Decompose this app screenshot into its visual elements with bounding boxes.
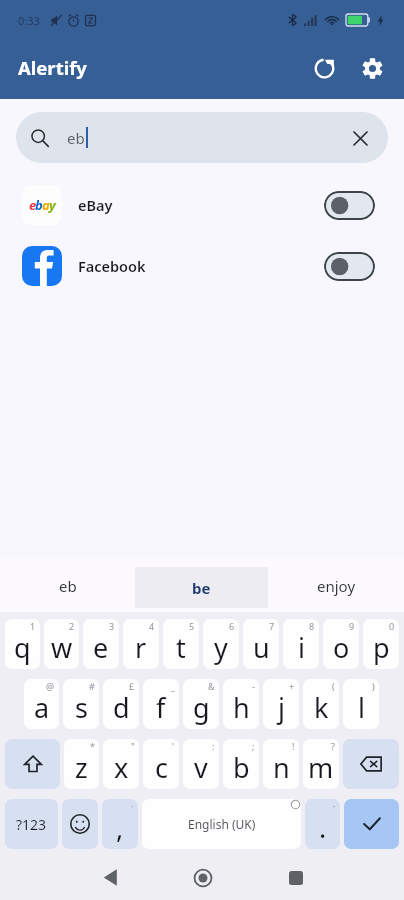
button[interactable]: Enter bbox=[344, 799, 399, 849]
button[interactable]: ' bbox=[143, 739, 179, 789]
button[interactable]: · bbox=[305, 799, 340, 849]
button[interactable]: £ bbox=[103, 679, 139, 729]
button[interactable]: ) bbox=[343, 679, 379, 729]
staticText: b bbox=[233, 749, 250, 786]
button[interactable]: ! bbox=[263, 739, 299, 789]
button[interactable]: + bbox=[263, 679, 299, 729]
staticText: 0:33 bbox=[18, 13, 40, 28]
staticText: eb bbox=[67, 128, 85, 148]
staticText: p bbox=[373, 629, 390, 666]
staticText: 1 bbox=[30, 620, 36, 632]
staticText: : bbox=[212, 740, 215, 752]
button[interactable]: eb bbox=[16, 112, 388, 163]
button[interactable]: : bbox=[183, 739, 219, 789]
button[interactable]: 3 bbox=[83, 619, 119, 669]
staticText: d bbox=[113, 689, 130, 726]
staticText: _ bbox=[171, 680, 175, 692]
staticText: y bbox=[49, 196, 55, 214]
staticText: * bbox=[90, 740, 95, 752]
staticText: o bbox=[333, 629, 350, 666]
staticText: # bbox=[89, 680, 95, 692]
button[interactable]: & bbox=[183, 679, 219, 729]
button[interactable]: 7 bbox=[243, 619, 279, 669]
button[interactable]: ; bbox=[223, 739, 259, 789]
button[interactable]: 5 bbox=[163, 619, 199, 669]
staticText: 3 bbox=[109, 620, 115, 632]
button[interactable]: Emoji bbox=[62, 799, 98, 849]
staticText: eBay bbox=[78, 195, 113, 215]
button[interactable]: 8 bbox=[283, 619, 319, 669]
button[interactable]: 6 bbox=[203, 619, 239, 669]
staticText: m bbox=[308, 749, 334, 786]
staticText: w bbox=[51, 629, 73, 666]
button[interactable]: · bbox=[102, 799, 138, 849]
button[interactable]: @ bbox=[24, 679, 59, 729]
button[interactable]: ( bbox=[303, 679, 339, 729]
button[interactable]: Home bbox=[180, 855, 225, 900]
staticText: b bbox=[35, 196, 42, 214]
button[interactable]: 9 bbox=[323, 619, 359, 669]
staticText: 0 bbox=[389, 620, 395, 632]
staticText: ( bbox=[332, 680, 335, 692]
staticText: e bbox=[29, 196, 35, 214]
staticText: Alertify bbox=[18, 55, 87, 80]
button[interactable]: _ bbox=[143, 679, 179, 729]
staticText: e bbox=[93, 629, 109, 666]
staticText: z bbox=[75, 749, 88, 786]
staticText: & bbox=[208, 680, 215, 692]
button[interactable]: Shift bbox=[5, 739, 60, 789]
staticText: u bbox=[253, 629, 270, 666]
staticText: 2 bbox=[69, 620, 75, 632]
staticText: @ bbox=[46, 680, 55, 692]
staticText: x bbox=[114, 749, 129, 786]
button[interactable]: Backspace bbox=[343, 739, 399, 789]
button[interactable]: 2 bbox=[44, 619, 79, 669]
button[interactable]: Recent apps bbox=[273, 855, 318, 900]
button[interactable] bbox=[324, 191, 375, 220]
staticText: l bbox=[358, 689, 365, 726]
button[interactable]: enjoy bbox=[268, 559, 404, 612]
staticText: q bbox=[14, 629, 31, 666]
button[interactable]: 0 bbox=[363, 619, 399, 669]
button[interactable]: eb bbox=[0, 559, 135, 612]
staticText: j bbox=[278, 689, 285, 726]
staticText: 7 bbox=[269, 620, 275, 632]
button[interactable]: * bbox=[64, 739, 99, 789]
staticText: f bbox=[156, 689, 166, 726]
staticText: g bbox=[193, 689, 210, 726]
staticText: 5 bbox=[189, 620, 195, 632]
staticText: a bbox=[42, 196, 49, 214]
button[interactable] bbox=[324, 252, 375, 281]
button[interactable]: be bbox=[135, 567, 268, 608]
button[interactable]: English (UK) bbox=[142, 799, 301, 849]
button[interactable]: # bbox=[63, 679, 99, 729]
button[interactable]: Settings bbox=[348, 44, 396, 92]
button[interactable]: Back bbox=[88, 855, 133, 900]
staticText: enjoy bbox=[317, 576, 356, 596]
button[interactable]: - bbox=[223, 679, 259, 729]
button[interactable]: Refresh bbox=[300, 44, 348, 92]
staticText: t bbox=[176, 629, 186, 666]
staticText: · bbox=[131, 800, 134, 812]
button[interactable]: ?123 bbox=[5, 799, 58, 849]
staticText: 9 bbox=[349, 620, 355, 632]
button[interactable]: Clear search bbox=[336, 114, 384, 162]
button[interactable]: Facebook bbox=[0, 246, 404, 286]
staticText: , bbox=[116, 809, 124, 846]
staticText: a bbox=[34, 689, 50, 726]
staticText: r bbox=[135, 629, 147, 666]
staticText: · bbox=[333, 800, 336, 812]
button[interactable]: " bbox=[103, 739, 139, 789]
button[interactable]: 4 bbox=[123, 619, 159, 669]
button[interactable]: 1 bbox=[5, 619, 40, 669]
staticText: " bbox=[131, 740, 135, 752]
staticText: . bbox=[319, 809, 327, 846]
staticText: i bbox=[298, 629, 305, 666]
staticText: 4 bbox=[149, 620, 155, 632]
button[interactable]: ? bbox=[303, 739, 339, 789]
staticText: n bbox=[273, 749, 290, 786]
staticText: be bbox=[192, 578, 211, 598]
staticText: v bbox=[194, 749, 208, 786]
staticText: s bbox=[75, 689, 88, 726]
button[interactable]: e bbox=[0, 185, 404, 225]
